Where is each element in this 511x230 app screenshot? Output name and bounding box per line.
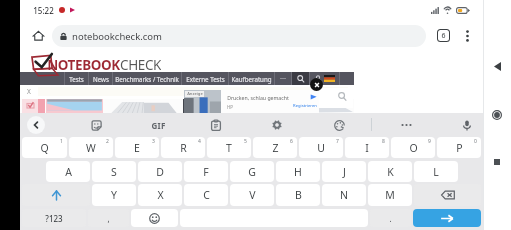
button[interactable]: V (230, 184, 274, 206)
staticText: X (157, 188, 164, 202)
button[interactable]: Shift (22, 184, 90, 206)
button[interactable]: T (207, 137, 251, 158)
staticText: V (249, 188, 256, 202)
staticText: F (203, 165, 209, 179)
staticText: A (65, 165, 72, 179)
staticText: , (107, 213, 110, 224)
staticText: 6 (290, 138, 293, 145)
staticText: C (203, 188, 210, 202)
staticText: 0 (474, 138, 477, 145)
button[interactable]: Theme (330, 116, 348, 134)
button[interactable]: notebookcheck.com (52, 25, 426, 47)
button[interactable]: Back (27, 116, 45, 134)
button[interactable]: E (115, 137, 159, 158)
button[interactable]: More (397, 116, 415, 134)
button[interactable]: Enter (413, 209, 481, 227)
staticText: E (134, 141, 140, 155)
button[interactable]: Close ad (310, 78, 323, 91)
staticText: 9 (428, 138, 431, 145)
button[interactable]: H (276, 161, 320, 182)
staticText: News (93, 75, 109, 83)
button[interactable]: Symbols (22, 209, 86, 227)
button[interactable]: K (368, 161, 412, 182)
button[interactable]: B (276, 184, 320, 206)
button[interactable]: More options (459, 27, 476, 44)
button[interactable]: O (391, 137, 435, 158)
button[interactable]: P (437, 137, 481, 158)
staticText: 2 (106, 138, 109, 145)
button[interactable]: Back (489, 58, 505, 74)
button[interactable]: Home (489, 107, 505, 123)
button[interactable]: W (69, 137, 113, 158)
staticText: D (156, 165, 164, 179)
staticText: 15:22 (33, 5, 54, 16)
button[interactable]: Comma (88, 209, 129, 227)
staticText: N (340, 188, 348, 202)
staticText: K (387, 165, 394, 179)
button[interactable]: I (345, 137, 389, 158)
staticText: 3 (152, 138, 155, 145)
staticText: HP (227, 104, 233, 110)
staticText: Kaufberatung (231, 75, 272, 83)
staticText: X (27, 87, 31, 96)
button[interactable]: Tests (65, 72, 88, 85)
staticText: 6 (441, 31, 446, 41)
button[interactable]: Benchmarks / Technik (113, 72, 181, 85)
button[interactable]: F (184, 161, 228, 182)
button[interactable]: Recent apps (489, 154, 505, 170)
button[interactable]: Stickers (87, 116, 105, 134)
button[interactable]: Backspace (414, 184, 481, 206)
button[interactable]: Period (370, 209, 411, 227)
button[interactable]: Voice input (458, 116, 476, 134)
button[interactable]: Settings (268, 116, 286, 134)
button[interactable]: N (322, 184, 366, 206)
staticText: J (343, 165, 346, 179)
button[interactable]: X (138, 184, 182, 206)
staticText: 7 (336, 138, 339, 145)
staticText: NOTEBOOK (47, 56, 120, 70)
button[interactable]: Search (292, 72, 309, 85)
button[interactable]: Home (28, 25, 49, 46)
staticText: R (180, 141, 187, 155)
staticText: Drucken, schlau gemacht (227, 94, 289, 101)
button[interactable]: Z (253, 137, 297, 158)
button[interactable]: S (92, 161, 136, 182)
button[interactable]: Y (92, 184, 136, 206)
staticText: 5 (244, 138, 247, 145)
button[interactable]: M (368, 184, 412, 206)
button[interactable]: GIF (147, 116, 169, 134)
button[interactable]: Clipboard (207, 116, 225, 134)
button[interactable]: R (161, 137, 205, 158)
staticText: P (456, 141, 463, 155)
button[interactable]: Tabs (435, 27, 452, 44)
button[interactable]: G (230, 161, 274, 182)
staticText: U (317, 141, 325, 155)
button[interactable]: L (414, 161, 458, 182)
staticText: GIF (151, 120, 166, 131)
button[interactable]: Kaufberatung (229, 72, 274, 85)
button[interactable]: D (138, 161, 182, 182)
staticText: S (111, 165, 117, 179)
button[interactable]: Q (22, 137, 67, 158)
staticText: M (385, 188, 395, 202)
staticText: B (295, 188, 302, 202)
staticText: 8 (382, 138, 385, 145)
button[interactable]: News (89, 72, 112, 85)
staticText: Anzeige (187, 91, 203, 97)
button[interactable] (131, 209, 178, 227)
staticText: ?123 (45, 213, 63, 224)
staticText: Q (40, 141, 49, 155)
staticText: Benchmarks / Technik (115, 75, 179, 83)
button[interactable]: A (46, 161, 90, 182)
staticText: . (389, 213, 392, 224)
button[interactable]: C (184, 184, 228, 206)
button[interactable]: Externe Tests (182, 72, 228, 85)
button[interactable]: Anzeige (184, 90, 319, 113)
button[interactable]: J (322, 161, 366, 182)
staticText: I (365, 141, 369, 155)
staticText: Registrieren (293, 103, 317, 109)
button[interactable]: U (299, 137, 343, 158)
staticText: notebookcheck.com (72, 30, 162, 43)
staticText: Tests (69, 75, 84, 83)
